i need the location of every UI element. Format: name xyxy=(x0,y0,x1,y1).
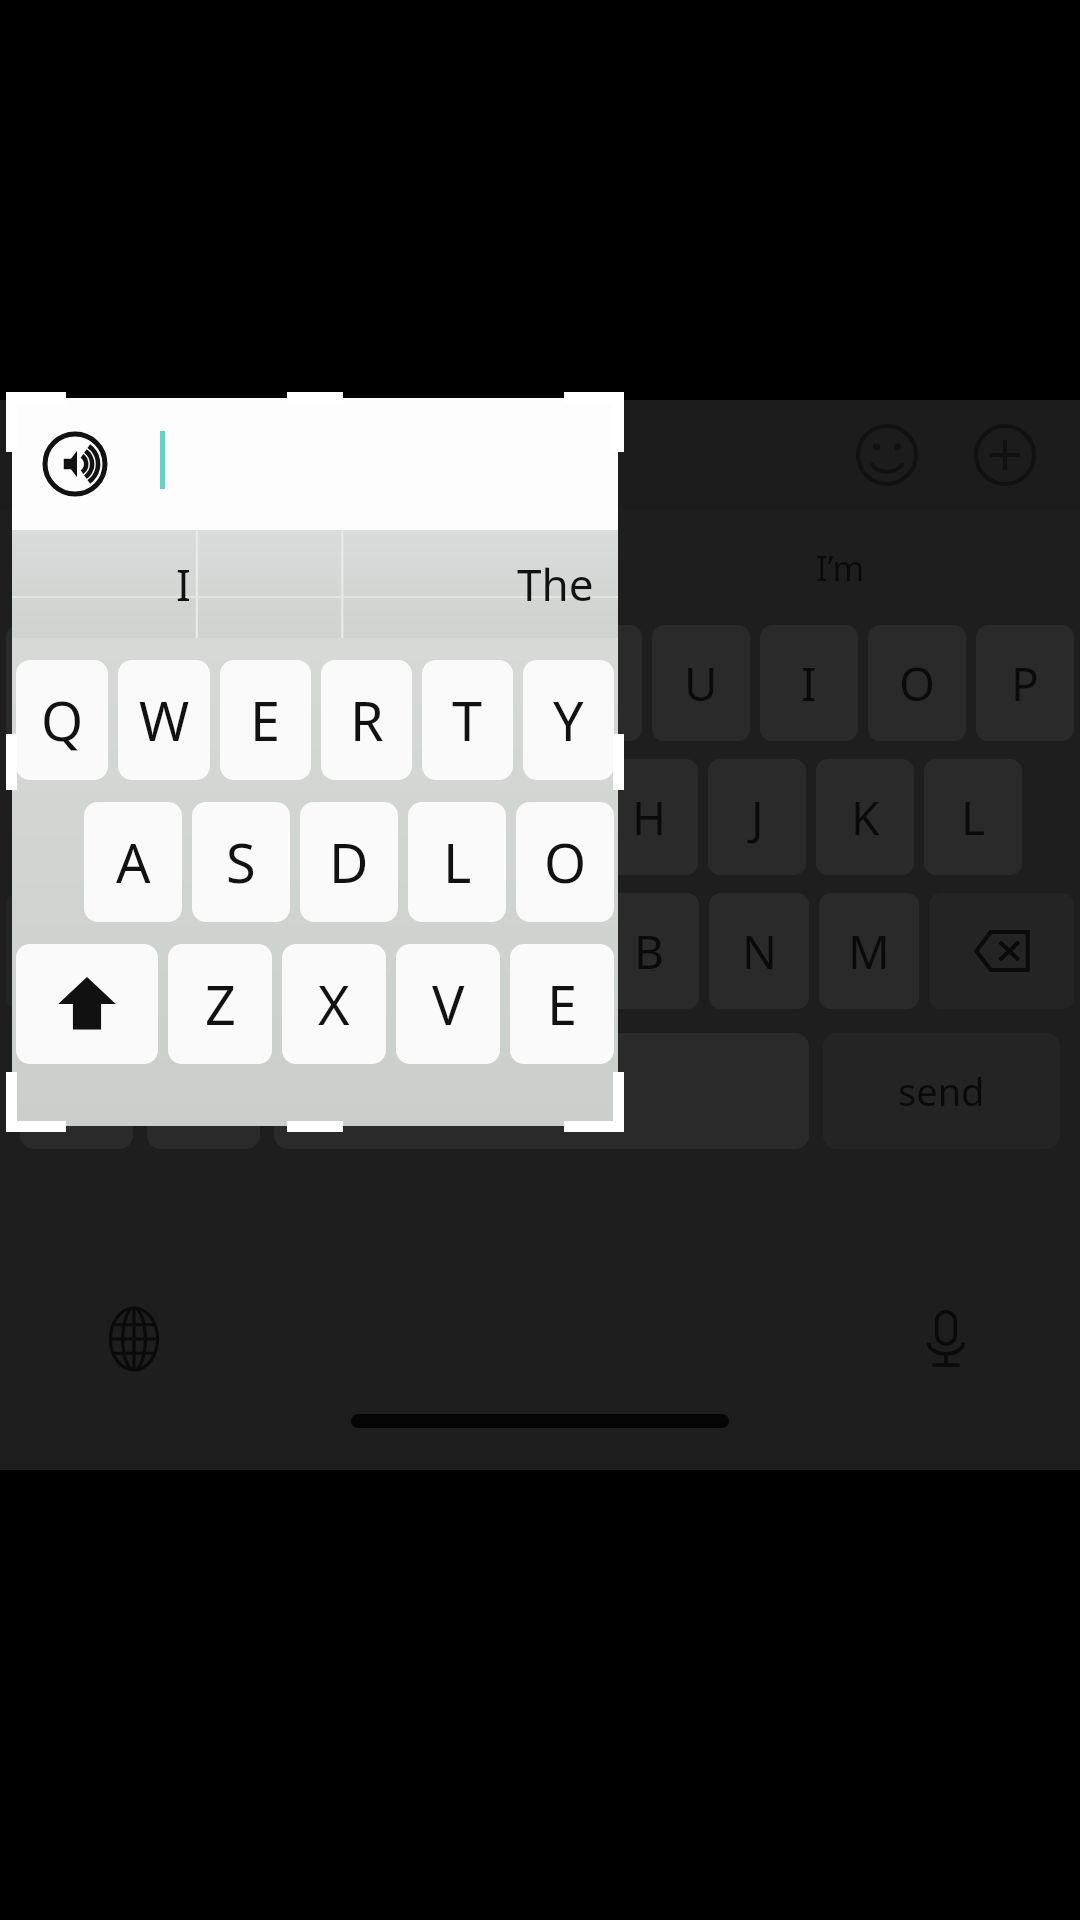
button[interactable]: A xyxy=(84,802,182,922)
staticText: L xyxy=(961,786,986,849)
staticText: E xyxy=(256,652,282,715)
button[interactable]: C xyxy=(379,893,479,1009)
button[interactable]: R xyxy=(328,625,426,741)
staticText: H xyxy=(632,786,667,849)
button[interactable]: Shift xyxy=(16,944,158,1064)
staticText: K xyxy=(851,786,880,849)
button[interactable]: I xyxy=(760,625,858,741)
button[interactable]: S xyxy=(167,759,266,875)
button[interactable]: O xyxy=(868,625,966,741)
button[interactable]: Speak xyxy=(42,431,108,497)
button[interactable]: Add attachment xyxy=(966,416,1044,494)
staticText: A xyxy=(93,786,123,849)
button[interactable]: Y xyxy=(544,625,642,741)
button[interactable]: Q xyxy=(6,625,103,741)
staticText: X xyxy=(306,920,333,983)
staticText: Z xyxy=(196,920,223,983)
staticText: J xyxy=(751,786,764,849)
staticText: W xyxy=(139,683,190,757)
staticText: Z xyxy=(205,967,236,1041)
button[interactable]: L xyxy=(408,802,506,922)
button[interactable]: E xyxy=(220,625,318,741)
button[interactable]: J xyxy=(708,759,806,875)
button[interactable]: Emoji keyboard xyxy=(147,1033,260,1149)
staticText: Y xyxy=(580,652,607,715)
staticText: Y xyxy=(553,683,584,757)
button[interactable]: The xyxy=(517,554,594,614)
staticText: R xyxy=(350,683,384,757)
staticText: D xyxy=(308,786,342,849)
staticText: O xyxy=(544,825,587,899)
button[interactable]: W xyxy=(113,625,210,741)
button[interactable]: W xyxy=(118,660,210,780)
button[interactable]: P xyxy=(976,625,1074,741)
button[interactable]: V xyxy=(396,944,500,1064)
button[interactable]: Y xyxy=(523,660,614,780)
staticText: E xyxy=(547,967,578,1041)
staticText: X xyxy=(318,967,350,1041)
button[interactable]: L xyxy=(924,759,1022,875)
button[interactable]: U xyxy=(652,625,750,741)
staticText: G xyxy=(524,786,558,849)
staticText: T xyxy=(452,683,483,757)
staticText: send xyxy=(898,1065,985,1117)
staticText: O xyxy=(899,652,935,715)
button[interactable]: D xyxy=(300,802,398,922)
button[interactable]: space xyxy=(274,1033,809,1149)
button[interactable]: G xyxy=(492,759,590,875)
staticText: U xyxy=(684,652,718,715)
staticText: Q xyxy=(37,652,73,715)
button[interactable]: S xyxy=(192,802,290,922)
button[interactable]: E xyxy=(510,944,614,1064)
button[interactable]: E xyxy=(220,660,311,780)
button[interactable]: send xyxy=(823,1033,1060,1149)
staticText: F xyxy=(421,786,445,849)
button[interactable]: Emoji xyxy=(848,416,926,494)
button[interactable]: M xyxy=(819,893,919,1009)
button[interactable]: D xyxy=(276,759,374,875)
button[interactable]: O xyxy=(516,802,614,922)
button[interactable]: B xyxy=(599,893,699,1009)
staticText: V xyxy=(525,920,553,983)
staticText: E xyxy=(250,683,281,757)
button[interactable]: Q xyxy=(16,660,108,780)
staticText: L xyxy=(443,825,472,899)
button[interactable]: F xyxy=(384,759,482,875)
button[interactable]: T xyxy=(422,660,513,780)
button[interactable]: Dictate xyxy=(902,1295,990,1383)
staticText: A xyxy=(116,825,151,899)
staticText: B xyxy=(634,920,664,983)
staticText: W xyxy=(140,652,183,715)
button[interactable]: V xyxy=(489,893,589,1009)
button[interactable]: 123 xyxy=(20,1033,133,1149)
staticText: S xyxy=(204,786,230,849)
staticText: P xyxy=(1011,652,1039,715)
staticText: M xyxy=(848,920,890,983)
button[interactable]: I’m xyxy=(816,545,865,591)
button[interactable]: R xyxy=(321,660,412,780)
button[interactable]: I xyxy=(176,554,191,614)
button[interactable]: X xyxy=(269,893,369,1009)
button[interactable]: N xyxy=(709,893,809,1009)
button[interactable]: T xyxy=(436,625,534,741)
button[interactable]: Change keyboard language xyxy=(90,1295,178,1383)
staticText: R xyxy=(363,652,392,715)
button[interactable]: Z xyxy=(160,893,259,1009)
staticText: Q xyxy=(41,683,84,757)
staticText: I xyxy=(801,652,817,715)
staticText: S xyxy=(226,825,256,899)
staticText: C xyxy=(414,920,444,983)
button[interactable]: Z xyxy=(168,944,272,1064)
button[interactable]: H xyxy=(600,759,698,875)
button[interactable]: Backspace xyxy=(929,893,1074,1009)
staticText: V xyxy=(432,967,465,1041)
button[interactable]: A xyxy=(58,759,157,875)
button[interactable]: K xyxy=(816,759,914,875)
staticText: D xyxy=(329,825,369,899)
button[interactable]: Shift xyxy=(6,893,150,1009)
button[interactable]: X xyxy=(282,944,386,1064)
staticText: T xyxy=(472,652,498,715)
staticText: N xyxy=(742,920,777,983)
